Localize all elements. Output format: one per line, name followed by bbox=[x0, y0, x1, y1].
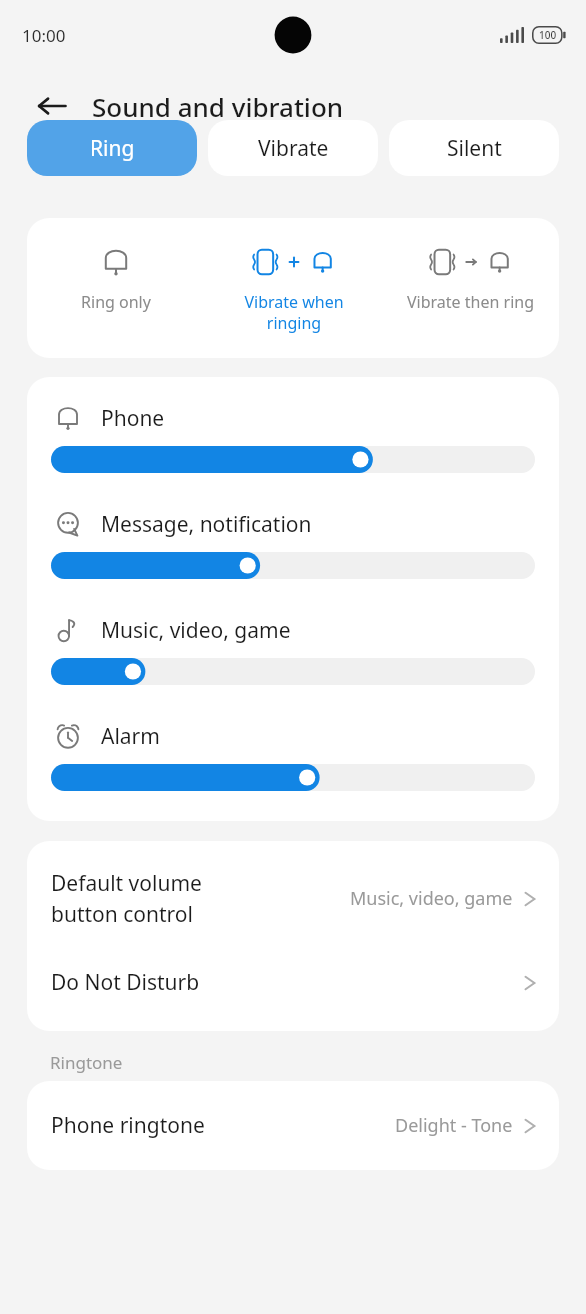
staticText: Message, notification bbox=[101, 510, 312, 539]
staticText: 100 bbox=[539, 28, 557, 42]
button[interactable]: Do Not Disturb bbox=[27, 946, 559, 1031]
staticText: Delight - Tone bbox=[395, 1113, 513, 1138]
button[interactable]: Ring only bbox=[27, 242, 205, 313]
button[interactable]: Vibrate when ringing bbox=[205, 242, 382, 334]
button[interactable]: Ring bbox=[27, 120, 197, 176]
button[interactable]: Music, video, game bbox=[27, 613, 559, 685]
staticText: Phone bbox=[101, 404, 165, 433]
button[interactable]: Message, notification bbox=[27, 507, 559, 579]
button[interactable]: Vibrate then ring bbox=[382, 242, 559, 313]
staticText: Vibrate then ring bbox=[407, 291, 534, 313]
button[interactable]: Default volume button control bbox=[27, 841, 559, 946]
staticText: Music, video, game bbox=[350, 886, 513, 911]
staticText: Vibrate bbox=[258, 134, 329, 163]
staticText: Silent bbox=[447, 134, 502, 163]
staticText: Ring only bbox=[81, 291, 151, 313]
button[interactable]: Alarm bbox=[27, 719, 559, 791]
staticText: Vibrate when ringing bbox=[244, 291, 344, 334]
button[interactable]: Vibrate bbox=[208, 120, 378, 176]
button[interactable]: Phone bbox=[27, 401, 559, 473]
staticText: Do Not Disturb bbox=[51, 968, 523, 997]
button[interactable]: Silent bbox=[389, 120, 559, 176]
button[interactable]: Back bbox=[30, 84, 74, 128]
staticText: 10:00 bbox=[22, 24, 66, 47]
staticText: Alarm bbox=[101, 722, 160, 751]
staticText: Ringtone bbox=[50, 1051, 123, 1074]
staticText: Music, video, game bbox=[101, 616, 291, 645]
staticText: Sound and vibration bbox=[92, 89, 344, 124]
button[interactable]: Phone ringtone bbox=[27, 1081, 559, 1170]
staticText: Ring bbox=[90, 134, 135, 163]
staticText: Phone ringtone bbox=[51, 1111, 395, 1140]
staticText: Default volume button control bbox=[51, 869, 350, 928]
